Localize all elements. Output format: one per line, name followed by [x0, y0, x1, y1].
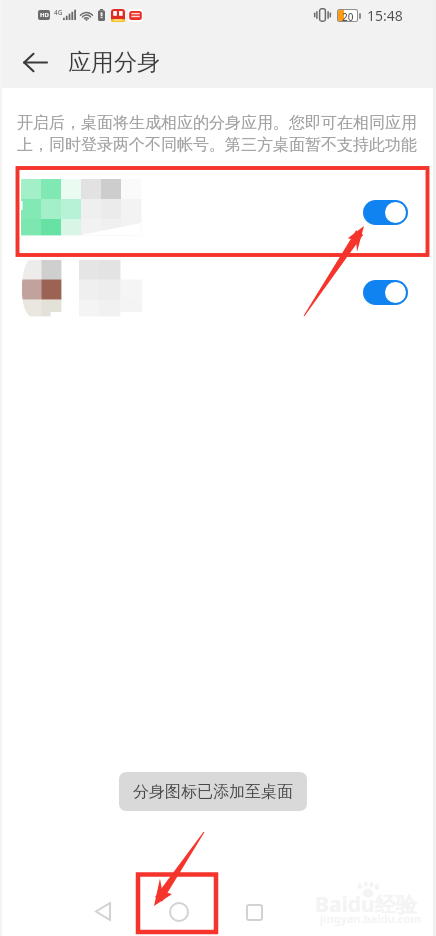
button[interactable]: 开关: [0, 172, 436, 252]
staticText: Baidu经验: [315, 890, 417, 919]
button[interactable]: 主页: [158, 891, 200, 933]
staticText: 开启后，桌面将生成相应的分身应用。您即可在相同应用上，同时登录两个不同帐号。第三…: [17, 113, 419, 154]
button[interactable]: 最近任务: [233, 891, 275, 933]
staticText: 20: [342, 10, 354, 21]
button[interactable]: 开关: [0, 252, 436, 332]
staticText: 4G: [54, 8, 62, 17]
button[interactable]: 开关: [363, 200, 408, 225]
button[interactable]: 分身图标已添加至桌面: [119, 772, 307, 811]
staticText: 分身图标已添加至桌面: [133, 782, 293, 802]
staticText: 应用分身: [68, 48, 160, 77]
button[interactable]: 返回: [82, 890, 124, 932]
staticText: HD: [40, 11, 49, 19]
button[interactable]: 返回: [15, 42, 56, 83]
button[interactable]: 开关: [363, 280, 408, 305]
staticText: 15:48: [367, 6, 403, 25]
staticText: jingyan.baidu.com: [320, 911, 422, 926]
